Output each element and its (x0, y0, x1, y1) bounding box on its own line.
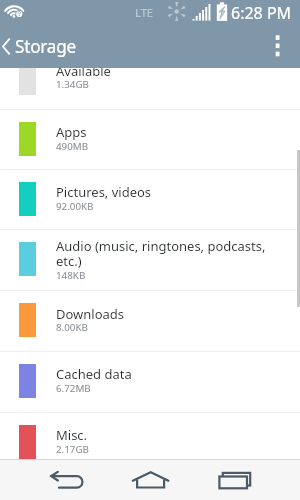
staticText: Apps (56, 123, 268, 141)
staticText: Audio (music, ringtones, podcasts, etc.) (56, 237, 268, 270)
staticText: Misc. (56, 426, 268, 444)
button[interactable]: Downloads (0, 291, 300, 351)
staticText: 490MB (56, 140, 89, 153)
button[interactable]: Storage (0, 31, 84, 62)
staticText: Cached data (56, 365, 268, 383)
button[interactable]: Apps (0, 110, 300, 169)
staticText: Available (56, 62, 268, 80)
button[interactable]: Audio (music, ringtones, podcasts, etc.) (0, 230, 300, 290)
staticText: LTE (135, 5, 153, 20)
staticText: 1.34GB (56, 78, 89, 91)
staticText: 2.17GB (56, 443, 89, 456)
button[interactable]: Home (100, 459, 200, 500)
staticText: 6:28 PM (231, 2, 292, 24)
button[interactable]: Recent apps (200, 459, 300, 500)
staticText: Pictures, videos (56, 183, 268, 201)
button[interactable]: Misc. (0, 413, 300, 459)
staticText: 148KB (56, 269, 86, 282)
button[interactable]: Pictures, videos (0, 170, 300, 229)
staticText: 6.72MB (56, 382, 91, 395)
button[interactable]: Back (0, 459, 100, 500)
staticText: Storage (15, 35, 76, 58)
button[interactable]: Cached data (0, 352, 300, 411)
button[interactable]: More options (256, 24, 300, 68)
button[interactable]: Available (0, 48, 300, 109)
staticText: 92.00KB (56, 200, 94, 213)
staticText: Downloads (56, 305, 268, 323)
staticText: 8.00KB (56, 321, 88, 334)
